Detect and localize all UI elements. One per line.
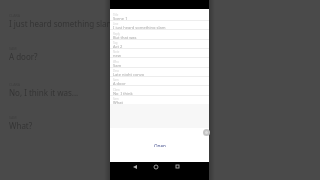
staticText: Desc <box>113 69 120 73</box>
button[interactable]: CLARA <box>0 82 320 96</box>
staticText: I just heard something slam <box>113 25 209 30</box>
staticText: Scene 1 <box>113 16 209 21</box>
button[interactable]: Note <box>110 49 209 58</box>
staticText: Tag <box>113 41 118 45</box>
staticText: Title <box>113 13 119 17</box>
staticText: What <box>113 100 209 105</box>
button[interactable]: SAM <box>0 115 320 129</box>
staticText: new <box>113 53 209 58</box>
staticText: Sam <box>113 78 119 82</box>
staticText: Sam <box>113 97 119 101</box>
staticText: Reply <box>113 32 120 36</box>
button[interactable]: Clara <box>110 87 209 96</box>
button[interactable]: Who <box>110 59 209 68</box>
staticText: No, I think it was... <box>9 87 79 98</box>
staticText: No, I think <box>113 91 209 96</box>
staticText: Open <box>154 143 166 147</box>
button[interactable]: Home <box>151 162 160 171</box>
staticText: But that was <box>113 35 209 40</box>
staticText: Note <box>113 50 120 54</box>
staticText: Who <box>113 60 119 64</box>
staticText: Late night convo <box>113 72 209 77</box>
button[interactable]: Sam <box>110 77 209 86</box>
staticText: What? <box>9 120 33 131</box>
button[interactable]: CLARA <box>0 13 320 27</box>
button[interactable]: Line <box>110 21 209 30</box>
staticText: Clara <box>113 88 120 92</box>
staticText: Line <box>113 22 119 26</box>
button[interactable]: Recent apps <box>173 162 182 171</box>
button[interactable]: Scroll to top <box>203 129 210 136</box>
button[interactable]: Back <box>130 162 139 171</box>
staticText: Act 2 <box>113 44 209 49</box>
staticText: Sam <box>113 63 209 68</box>
button[interactable]: SAM <box>0 46 320 60</box>
button[interactable]: Desc <box>110 68 209 77</box>
button[interactable]: Reply <box>110 31 209 40</box>
button[interactable]: Sam <box>110 96 209 105</box>
staticText: A door <box>113 81 209 86</box>
staticText: I just heard something slam the <box>9 18 129 29</box>
staticText: A door? <box>9 51 38 62</box>
button[interactable]: Open <box>147 139 173 151</box>
button[interactable]: Title <box>110 12 209 21</box>
button[interactable]: Tag <box>110 40 209 49</box>
